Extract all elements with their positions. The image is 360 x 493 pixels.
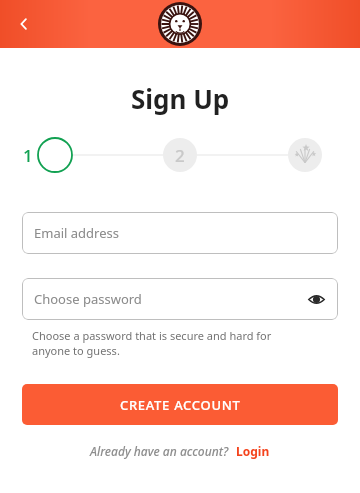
staticText: Sign Up [131, 81, 230, 116]
staticText: 2 [175, 144, 185, 167]
button[interactable]: Login [236, 443, 270, 459]
button[interactable]: Choose password [22, 278, 338, 320]
staticText: Email address [34, 224, 119, 242]
staticText: 1 [23, 144, 33, 167]
button[interactable]: Show password [304, 287, 328, 311]
staticText: Login [236, 443, 270, 459]
button[interactable]: CREATE ACCOUNT [22, 384, 338, 425]
staticText: Choose password [34, 290, 142, 308]
button[interactable]: Back [8, 8, 40, 40]
staticText: CREATE ACCOUNT [120, 396, 241, 414]
button[interactable]: Email address [22, 212, 338, 254]
staticText: Choose a password that is secure and har… [32, 328, 310, 358]
staticText: Already have an account? [90, 443, 229, 459]
